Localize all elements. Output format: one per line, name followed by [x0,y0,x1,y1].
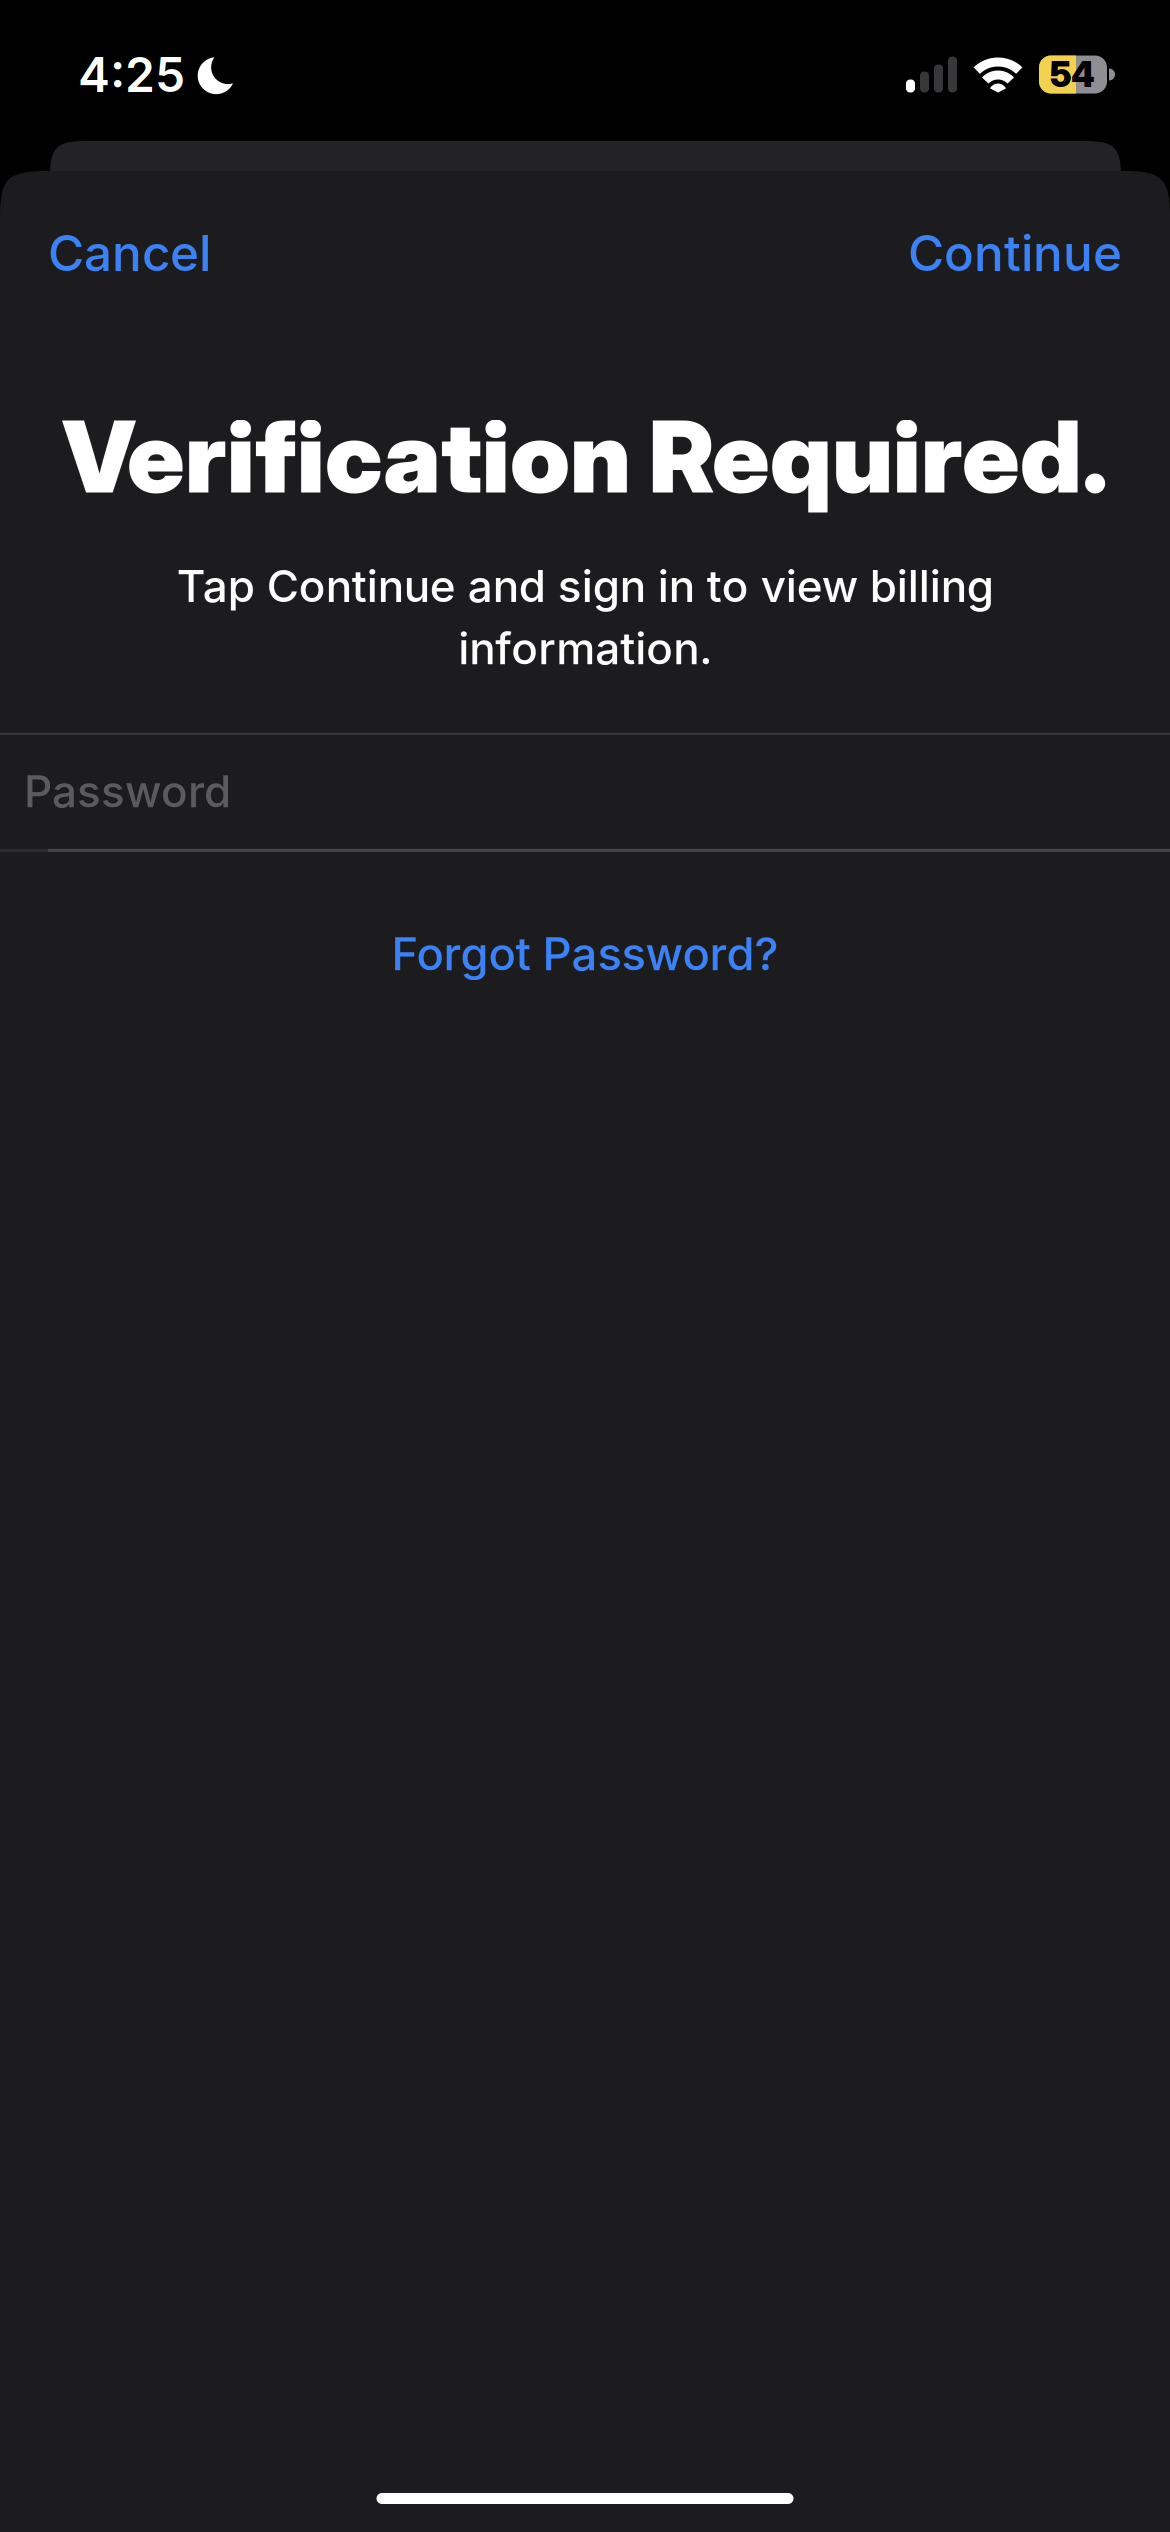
staticText: Continue [908,223,1122,283]
staticText: 4:25 [78,45,185,104]
staticText: Tap Continue and sign in to view billing… [176,559,993,675]
staticText: Password [24,765,231,818]
staticText: Cancel [48,223,211,283]
button[interactable]: Forgot Password? [367,924,802,984]
staticText: 54 [1050,53,1095,95]
staticText: Verification Required. [62,397,1108,516]
button[interactable]: Password [0,735,1170,849]
button[interactable]: Continue [902,222,1128,284]
button[interactable]: Cancel [42,222,217,284]
staticText: Forgot Password? [391,926,778,981]
